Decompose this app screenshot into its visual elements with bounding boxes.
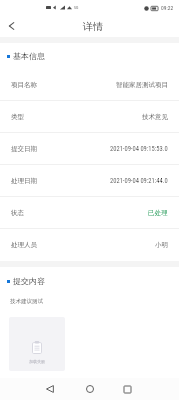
staticText: 小明 xyxy=(155,241,168,249)
staticText: 智能家居测试项目 xyxy=(116,81,168,89)
staticText: 状态 xyxy=(11,209,24,217)
staticText: 2021-09-04 09:15:53.0 xyxy=(110,145,168,153)
button[interactable]: 提交日期 xyxy=(0,133,179,165)
staticText: 项目名称 xyxy=(11,81,37,89)
staticText: 处理日期 xyxy=(11,177,37,185)
staticText: 技术意见 xyxy=(142,113,168,121)
staticText: 已处理 xyxy=(148,209,168,217)
button[interactable]: 处理日期 xyxy=(0,165,179,197)
staticText: 基本信息 xyxy=(13,51,45,61)
staticText: 详情 xyxy=(83,20,103,33)
button[interactable]: 类型 xyxy=(0,101,179,133)
staticText: 提交日期 xyxy=(11,145,37,153)
button[interactable]: Home xyxy=(80,379,100,399)
staticText: 提交内容 xyxy=(13,276,45,286)
button[interactable]: Back xyxy=(0,15,22,37)
button[interactable]: Attachment image xyxy=(9,317,65,371)
staticText: 类型 xyxy=(11,113,24,121)
button[interactable]: 项目名称 xyxy=(0,69,179,101)
staticText: 2021-09-04 09:21:44.0 xyxy=(110,177,168,185)
staticText: 技术建议测试 xyxy=(10,298,43,305)
button[interactable]: Back xyxy=(40,379,60,399)
staticText: 处理人员 xyxy=(11,241,37,249)
staticText: 09:22 xyxy=(161,5,174,11)
button[interactable]: 状态 xyxy=(0,197,179,229)
staticText: 加载失败 xyxy=(29,359,45,364)
staticText: 5G xyxy=(74,5,79,10)
button[interactable]: 处理人员 xyxy=(0,229,179,261)
button[interactable]: Recent apps xyxy=(117,379,137,399)
